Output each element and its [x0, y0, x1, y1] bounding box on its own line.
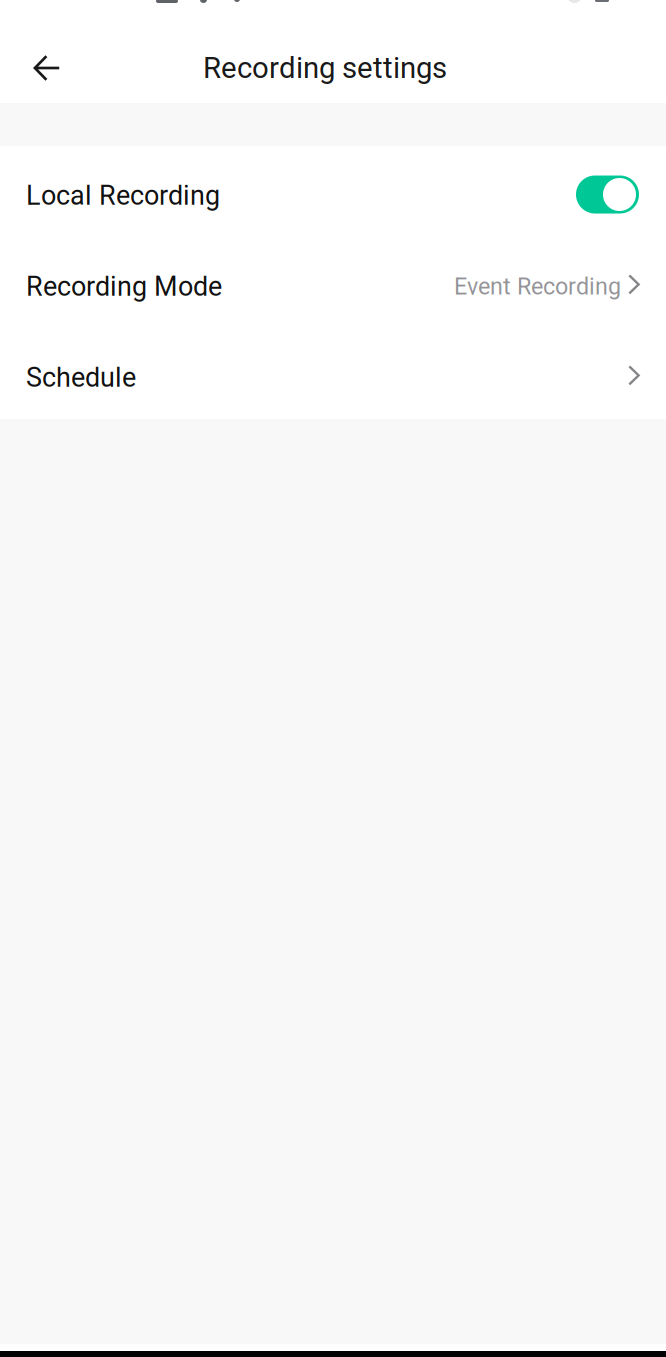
staticText: Local Recording: [26, 180, 220, 211]
staticText: Schedule: [26, 362, 136, 393]
button[interactable]: Local Recording: [0, 146, 666, 237]
staticText: Event Recording: [454, 273, 621, 300]
button[interactable]: Back: [0, 33, 70, 103]
button[interactable]: Schedule: [0, 328, 666, 419]
staticText: Recording Mode: [26, 271, 222, 302]
button[interactable]: Recording Mode: [0, 237, 666, 328]
staticText: Recording settings: [203, 51, 447, 85]
